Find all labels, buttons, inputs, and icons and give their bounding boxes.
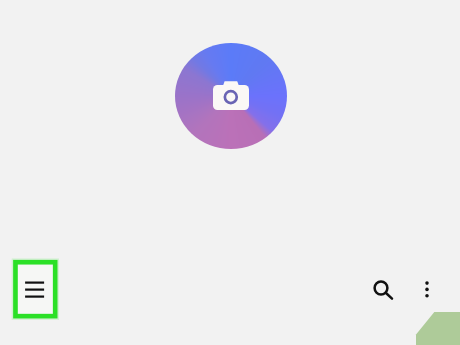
button[interactable]: More options xyxy=(410,270,445,306)
button[interactable]: Menu xyxy=(13,260,58,319)
button[interactable]: Search xyxy=(364,270,400,306)
button[interactable]: Open camera xyxy=(175,43,287,149)
button[interactable]: Photo thumbnail xyxy=(414,309,460,345)
